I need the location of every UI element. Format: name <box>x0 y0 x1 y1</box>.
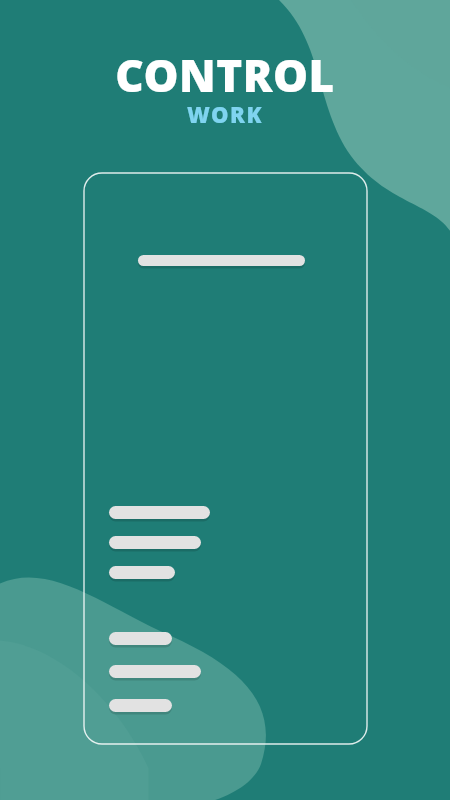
staticText: WORK <box>0 99 450 129</box>
button[interactable]: Document preview <box>0 0 450 800</box>
staticText: CONTROL <box>0 45 450 105</box>
